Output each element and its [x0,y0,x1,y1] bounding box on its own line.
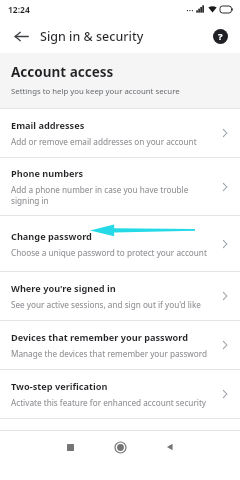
staticText: 12:24 [8,4,30,16]
staticText: ? [218,30,223,43]
button[interactable]: Help [210,26,230,46]
staticText: See your active sessions, and sign out i… [11,299,201,310]
button[interactable]: Where you're signed in [0,272,240,320]
button[interactable]: Back [150,431,190,463]
button[interactable]: Two-step verification [0,370,240,418]
staticText: Account access [11,63,114,81]
staticText: Add or remove email addresses on your ac… [11,136,197,147]
staticText: Devices that remember your password [11,331,189,344]
button[interactable]: Recent apps [50,431,90,463]
staticText: Email addresses [11,119,85,132]
button[interactable]: Back [10,25,32,47]
button[interactable]: Phone numbers [0,158,240,215]
staticText: Add a phone number in case you have trou… [11,184,208,206]
button[interactable]: Devices that remember your password [0,321,240,369]
staticText: Settings to help you keep your account s… [11,86,180,97]
button[interactable]: Email addresses [0,109,240,157]
staticText: Manage the devices that remember your pa… [11,348,208,359]
staticText: Two-step verification [11,380,108,393]
staticText: Phone numbers [11,167,84,180]
staticText: Change password [11,230,92,243]
button[interactable]: Home [100,431,140,463]
staticText: Activate this feature for enhanced accou… [11,397,207,408]
staticText: Sign in & security [40,28,144,45]
staticText: Choose a unique password to protect your… [11,247,207,258]
button[interactable]: Change password [0,216,240,271]
staticText: Where you're signed in [11,282,116,295]
